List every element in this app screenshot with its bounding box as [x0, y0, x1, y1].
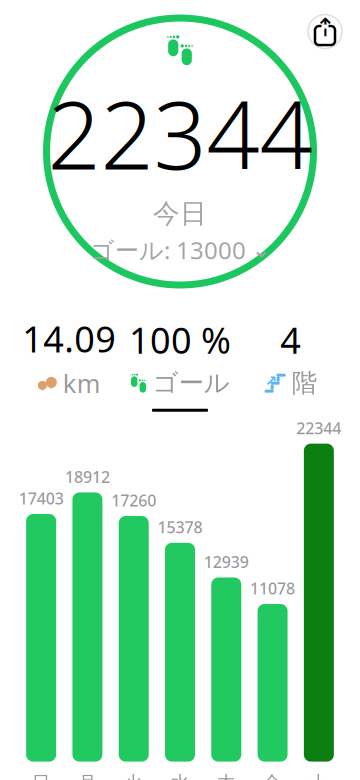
- staticText: 階: [292, 368, 317, 399]
- staticText: ⌄: [252, 238, 270, 262]
- staticText: ↑: [314, 13, 335, 42]
- staticText: 月: [78, 772, 97, 780]
- staticText: km: [63, 366, 101, 400]
- button[interactable]: 4: [235, 312, 346, 416]
- staticText: 日: [32, 772, 51, 780]
- staticText: 今日: [153, 197, 207, 230]
- staticText: 14.09: [22, 314, 116, 362]
- staticText: 22344: [47, 71, 312, 195]
- staticText: 11078: [250, 578, 295, 599]
- staticText: 水: [170, 772, 189, 780]
- staticText: 土: [309, 772, 328, 780]
- staticText: ゴール: 13000: [90, 234, 246, 266]
- staticText: ▾: [40, 381, 45, 393]
- staticText: 金: [263, 772, 282, 780]
- staticText: 17260: [111, 490, 156, 511]
- staticText: 100 %: [129, 316, 231, 364]
- staticText: 火: [124, 772, 143, 780]
- staticText: 木: [217, 772, 236, 780]
- button[interactable]: Share summary: [302, 8, 348, 54]
- button[interactable]: ゴール: 13000: [90, 232, 270, 268]
- staticText: 15378: [157, 516, 202, 538]
- staticText: 18912: [65, 466, 110, 487]
- staticText: ▾: [48, 377, 55, 392]
- staticText: 22344: [296, 417, 341, 439]
- staticText: 4: [280, 316, 301, 364]
- button[interactable]: 14.09: [14, 310, 125, 417]
- staticText: 12939: [204, 551, 249, 572]
- staticText: ゴール: [153, 368, 230, 399]
- button[interactable]: 100 %: [125, 312, 235, 416]
- staticText: ↗: [265, 373, 277, 389]
- staticText: 17403: [19, 488, 64, 509]
